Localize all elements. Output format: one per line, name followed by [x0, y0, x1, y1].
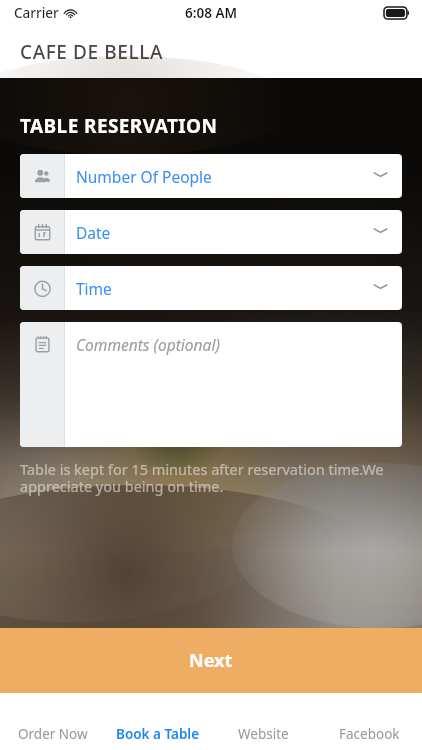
staticText: Facebook [339, 725, 400, 743]
button[interactable]: Time [20, 266, 402, 310]
staticText: Date [76, 222, 111, 243]
button[interactable]: Comments (optional) [20, 322, 402, 447]
staticText: Next [189, 648, 233, 673]
staticText: TABLE RESERVATION [20, 113, 218, 139]
staticText: Table is kept for 15 minutes after reser… [20, 459, 402, 496]
button[interactable]: Book a Table [105, 693, 210, 750]
button[interactable]: Number Of People [20, 154, 402, 198]
staticText: Number Of People [76, 166, 212, 187]
staticText: Carrier [14, 4, 59, 22]
button[interactable]: Facebook [316, 693, 422, 750]
button[interactable]: Next [0, 628, 422, 693]
staticText: 6:08 AM [185, 4, 238, 22]
staticText: Comments (optional) [76, 334, 220, 355]
staticText: Order Now [18, 725, 88, 743]
staticText: Website [238, 725, 289, 743]
button[interactable]: Website [210, 693, 316, 750]
button[interactable]: Date [20, 210, 402, 254]
button[interactable]: Order Now [0, 693, 105, 750]
staticText: Time [76, 278, 112, 299]
staticText: CAFE DE BELLA [20, 39, 164, 65]
staticText: Book a Table [116, 725, 200, 743]
